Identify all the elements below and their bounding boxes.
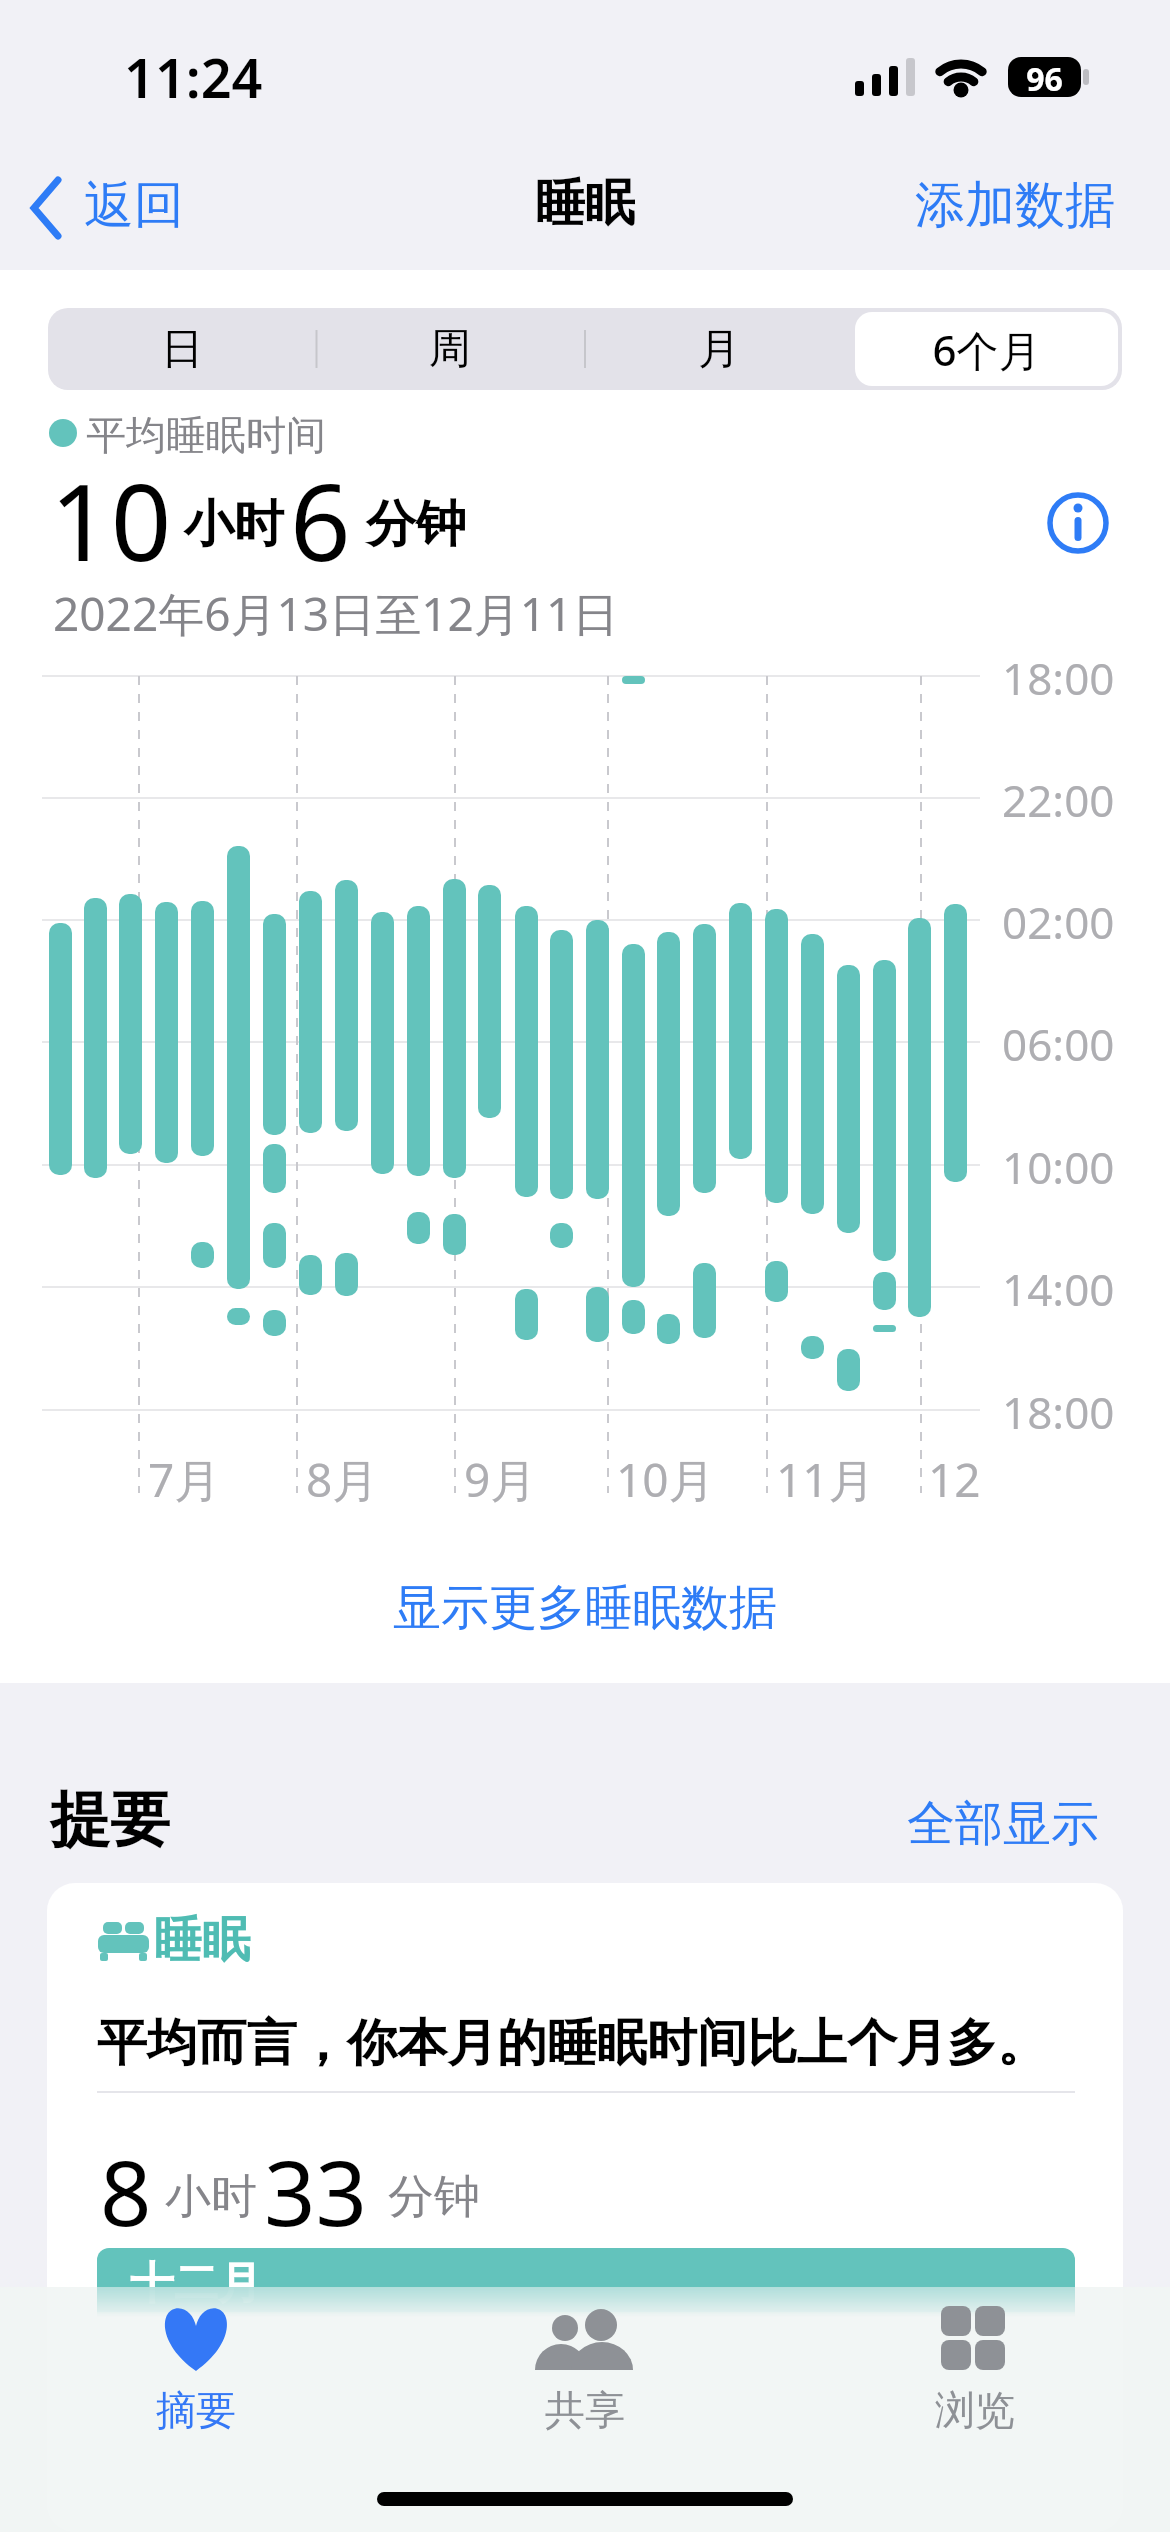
staticText: 十二月 bbox=[130, 2256, 262, 2311]
button[interactable] bbox=[146, 2290, 246, 2430]
staticText: 睡眠 bbox=[535, 172, 635, 228]
button[interactable]: 显示更多睡眠数据 bbox=[285, 1578, 885, 1638]
staticText: 06:00 bbox=[1002, 1014, 1115, 1074]
button[interactable]: 月 bbox=[585, 308, 853, 390]
button[interactable] bbox=[47, 1883, 1123, 2532]
staticText: 6 bbox=[290, 448, 351, 592]
staticText: 14:00 bbox=[1002, 1259, 1115, 1319]
staticText: 8 bbox=[100, 2130, 152, 2253]
staticText: 11:24 bbox=[124, 40, 263, 114]
staticText: 周 bbox=[429, 323, 471, 376]
button[interactable]: 日 bbox=[48, 308, 316, 390]
staticText: 9月 bbox=[464, 1448, 537, 1511]
button[interactable] bbox=[28, 178, 64, 238]
staticText: 6个月 bbox=[932, 321, 1041, 378]
staticText: 18:00 bbox=[1002, 1382, 1115, 1442]
staticText: 小时 bbox=[165, 2168, 257, 2226]
button[interactable] bbox=[1046, 491, 1110, 555]
staticText: 8月 bbox=[306, 1448, 379, 1511]
button[interactable]: 浏览 bbox=[915, 2385, 1035, 2431]
button[interactable]: 摘要 bbox=[136, 2385, 256, 2431]
staticText: 02:00 bbox=[1002, 892, 1115, 952]
staticText: 平均睡眠时间 bbox=[86, 410, 326, 460]
button[interactable]: 添加数据 bbox=[915, 174, 1115, 237]
staticText: 提要 bbox=[50, 1782, 170, 1858]
staticText: 22:00 bbox=[1002, 770, 1115, 830]
staticText: 平均而言，你本月的睡眠时间比上个月多。 bbox=[97, 2012, 1047, 2075]
staticText: 显示更多睡眠数据 bbox=[393, 1578, 777, 1638]
button[interactable]: 返回 bbox=[84, 174, 184, 237]
staticText: 摘要 bbox=[156, 2385, 236, 2431]
button[interactable]: 共享 bbox=[525, 2385, 645, 2431]
button[interactable] bbox=[535, 2290, 635, 2430]
staticText: 睡眠 bbox=[154, 1910, 250, 1970]
staticText: 10月 bbox=[616, 1448, 715, 1511]
button[interactable] bbox=[855, 312, 1118, 386]
button[interactable]: 全部显示 bbox=[907, 1794, 1099, 1854]
button[interactable]: 周 bbox=[316, 308, 584, 390]
button[interactable]: 6个月 bbox=[855, 312, 1118, 386]
button[interactable] bbox=[925, 2290, 1025, 2430]
staticText: 18:00 bbox=[1002, 648, 1115, 708]
staticText: 分钟 bbox=[388, 2168, 480, 2226]
staticText: 96 bbox=[1026, 57, 1063, 97]
staticText: 11月 bbox=[776, 1448, 875, 1511]
staticText: 月 bbox=[698, 323, 740, 376]
staticText: 日 bbox=[161, 323, 203, 376]
staticText: 分钟 bbox=[366, 493, 466, 556]
staticText: 10:00 bbox=[1002, 1137, 1115, 1197]
staticText: 浏览 bbox=[935, 2385, 1015, 2431]
staticText: 33 bbox=[264, 2130, 367, 2253]
staticText: 2022年6月13日至12月11日 bbox=[53, 582, 619, 645]
staticText: 12 bbox=[928, 1448, 981, 1511]
staticText: 10 bbox=[50, 448, 172, 592]
staticText: 共享 bbox=[545, 2385, 625, 2431]
staticText: 小时 bbox=[184, 493, 284, 556]
staticText: 7月 bbox=[148, 1448, 221, 1511]
